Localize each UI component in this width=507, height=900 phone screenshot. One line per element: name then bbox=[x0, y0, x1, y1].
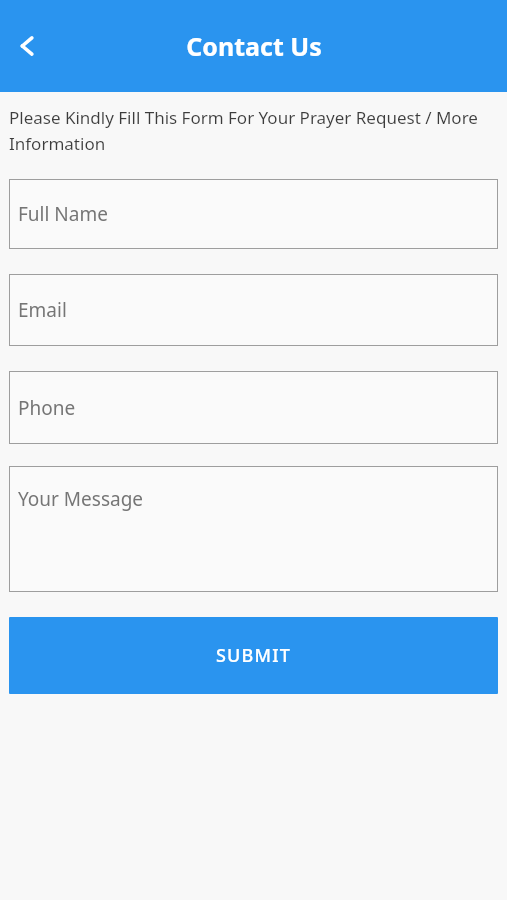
button[interactable]: Email bbox=[9, 274, 498, 346]
button[interactable]: Full Name bbox=[9, 179, 498, 249]
staticText: Phone bbox=[18, 395, 76, 421]
staticText: Contact Us bbox=[186, 29, 322, 63]
button[interactable]: SUBMIT bbox=[9, 617, 498, 694]
button[interactable]: Back bbox=[6, 23, 52, 69]
staticText: Full Name bbox=[18, 201, 108, 227]
staticText: SUBMIT bbox=[216, 643, 292, 668]
staticText: Your Message bbox=[18, 486, 144, 512]
button[interactable]: Phone bbox=[9, 371, 498, 444]
staticText: Please Kindly Fill This Form For Your Pr… bbox=[9, 106, 498, 155]
button[interactable]: Your Message bbox=[9, 466, 498, 592]
staticText: Email bbox=[18, 297, 67, 323]
